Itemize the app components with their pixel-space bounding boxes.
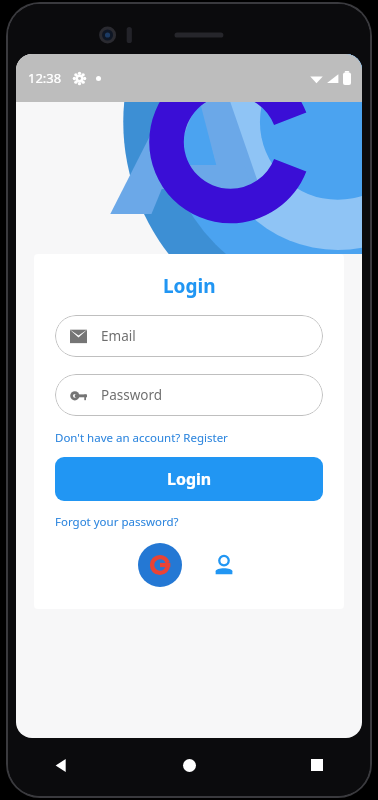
- button[interactable]: Forgot your password?: [55, 514, 323, 530]
- staticText: Email: [101, 327, 136, 345]
- staticText: Password: [101, 386, 163, 404]
- staticText: Login: [163, 273, 216, 299]
- button[interactable]: Sign in with Google: [138, 543, 182, 587]
- button[interactable]: Guest sign in: [207, 548, 241, 582]
- button[interactable]: Back: [42, 746, 80, 784]
- button[interactable]: Password: [55, 374, 323, 416]
- staticText: 12:38: [28, 69, 62, 87]
- staticText: Login: [167, 468, 212, 490]
- button[interactable]: Login: [55, 457, 323, 501]
- staticText: Forgot your password?: [55, 514, 179, 530]
- button[interactable]: Recent apps: [298, 746, 336, 784]
- button[interactable]: Home: [170, 746, 208, 784]
- button[interactable]: Don't have an account? Register: [55, 430, 323, 446]
- button[interactable]: Email: [55, 315, 323, 357]
- staticText: Don't have an account? Register: [55, 430, 228, 446]
